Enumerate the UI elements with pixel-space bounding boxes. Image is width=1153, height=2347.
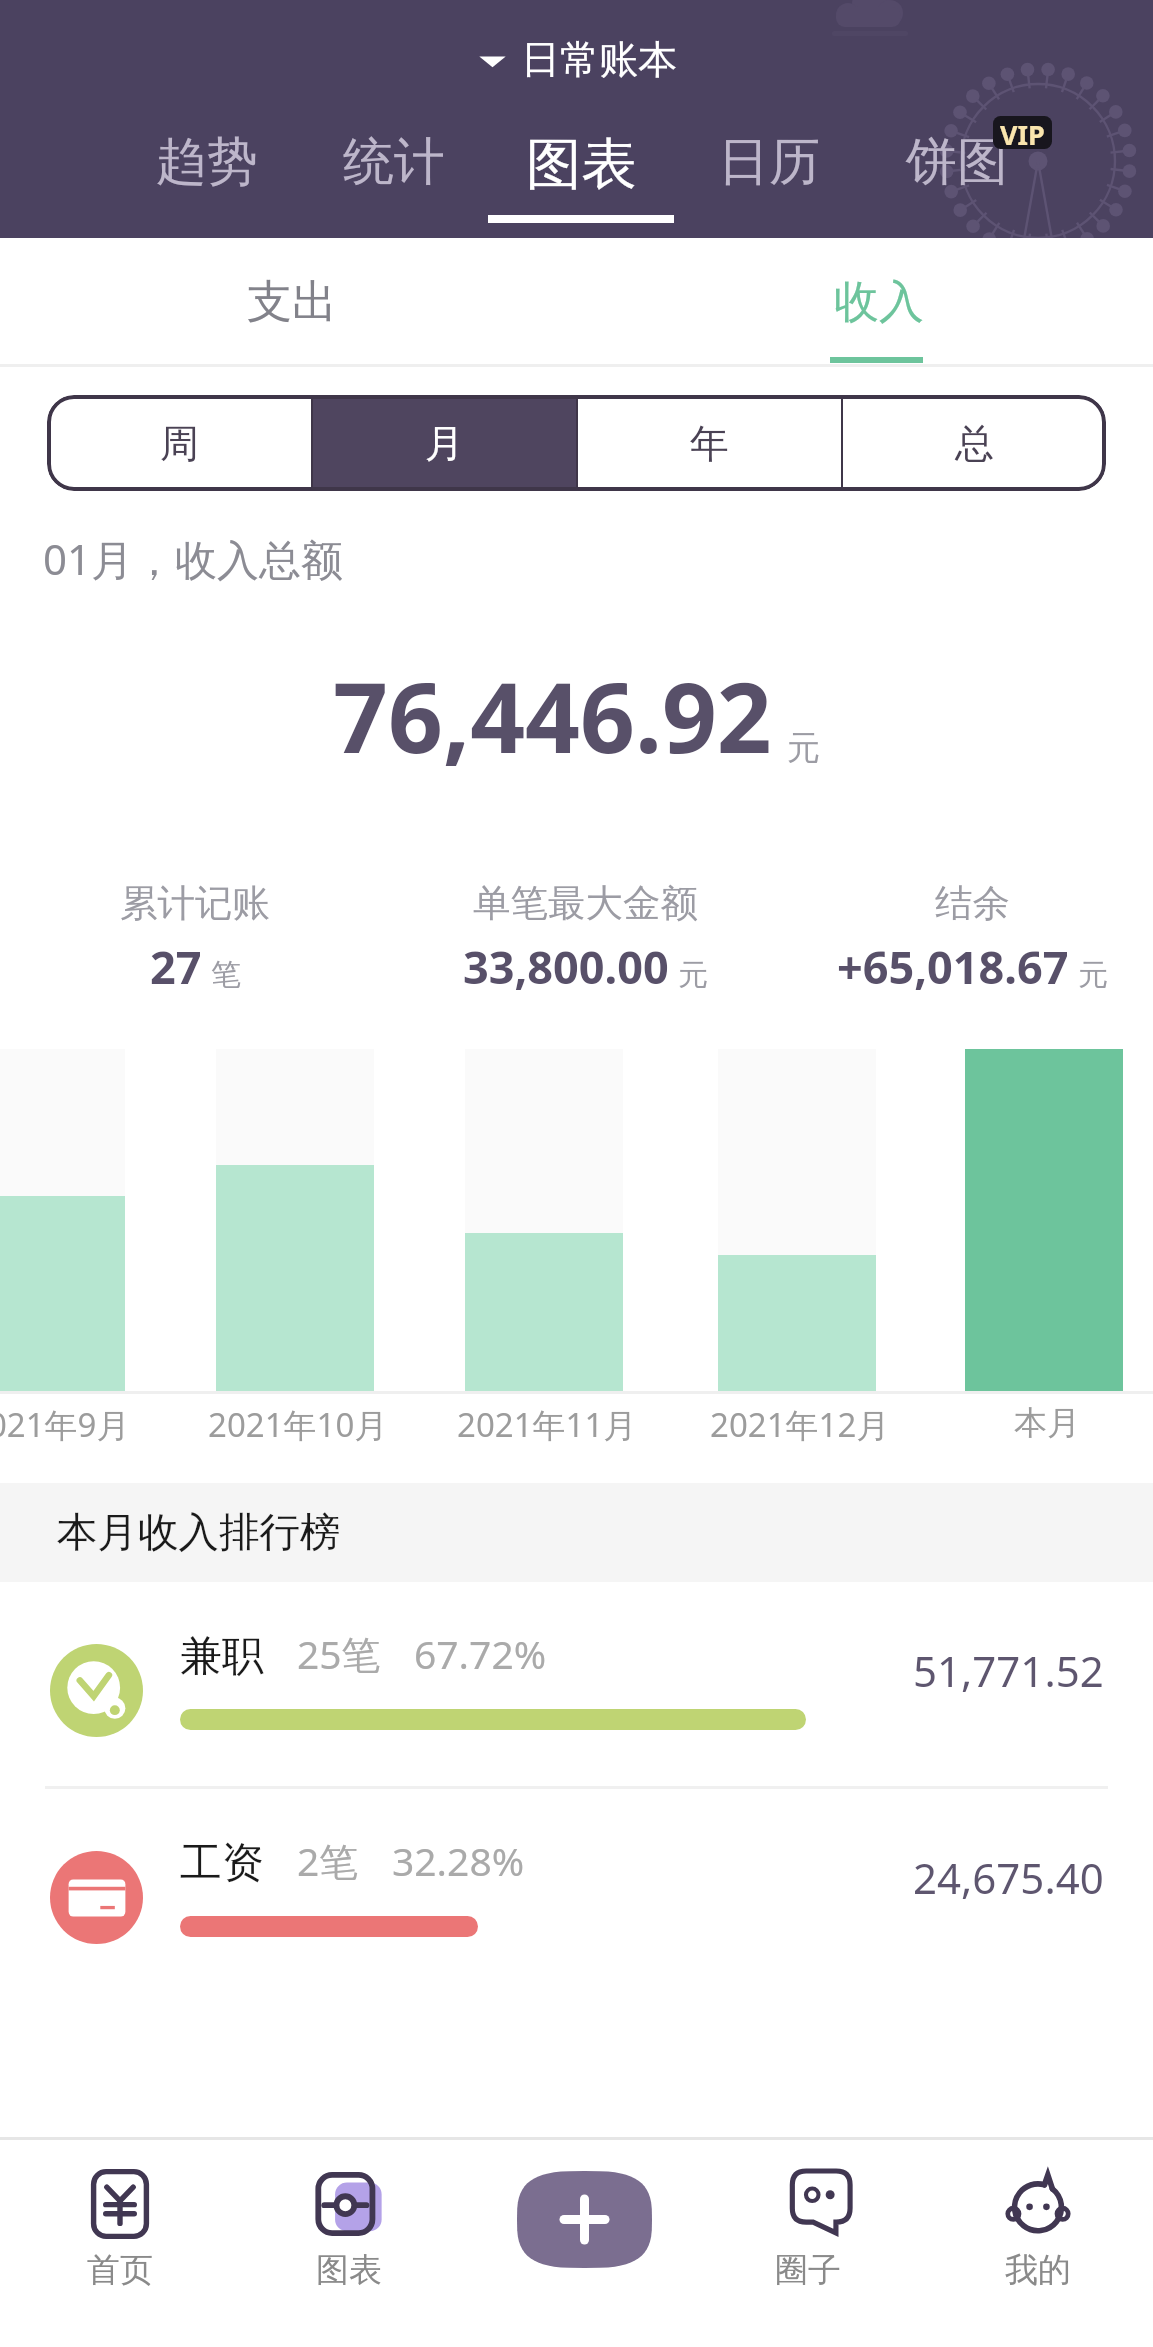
button[interactable]: 统计 xyxy=(300,118,487,238)
staticText: 我的 xyxy=(1005,2249,1071,2291)
staticText: 33,800.00 xyxy=(463,936,669,997)
staticText: 总 xyxy=(955,419,994,468)
button[interactable]: 日历 xyxy=(675,118,863,238)
staticText: 32.28% xyxy=(392,1834,525,1887)
staticText: 首页 xyxy=(87,2249,153,2291)
staticText: 支出 xyxy=(247,274,337,331)
staticText: 76,446.92 xyxy=(333,650,772,781)
staticText: 元 xyxy=(787,727,820,769)
staticText: 51,771.52 xyxy=(913,1642,1104,1699)
staticText: 2笔 xyxy=(297,1834,359,1887)
button[interactable]: 总 xyxy=(843,395,1106,491)
staticText: 元 xyxy=(678,956,708,994)
staticText: 2021年9月 xyxy=(0,1402,130,1447)
staticText: 27 xyxy=(150,936,202,997)
staticText: 图表 xyxy=(316,2249,382,2291)
staticText: 日常账本 xyxy=(521,35,677,84)
staticText: 24,675.40 xyxy=(913,1849,1104,1906)
staticText: 日历 xyxy=(718,130,820,194)
staticText: 结余 xyxy=(935,880,1010,927)
button[interactable]: 图表 xyxy=(234,2140,463,2347)
staticText: 趋势 xyxy=(156,130,258,194)
staticText: 累计记账 xyxy=(120,880,270,927)
staticText: 兼职 xyxy=(180,1630,264,1683)
button[interactable]: Add record xyxy=(517,2171,652,2268)
button[interactable]: 工资 xyxy=(0,1789,1153,1993)
staticText: 统计 xyxy=(343,130,445,194)
button[interactable]: 饼图 xyxy=(863,118,1051,238)
button[interactable]: 图表 xyxy=(487,118,675,238)
staticText: +65,018.67 xyxy=(837,936,1069,997)
staticText: 月 xyxy=(425,419,464,468)
button[interactable]: 我的 xyxy=(923,2140,1153,2347)
staticText: 周 xyxy=(160,419,199,468)
staticText: 年 xyxy=(690,419,729,468)
button[interactable]: 支出 xyxy=(0,238,576,364)
staticText: 2021年10月 xyxy=(208,1402,388,1447)
staticText: 67.72% xyxy=(414,1627,547,1680)
staticText: 本月收入排行榜 xyxy=(57,1507,341,1558)
staticText: VIP xyxy=(1000,116,1045,149)
button[interactable]: 首页 xyxy=(5,2140,234,2347)
staticText: 01月，收入总额 xyxy=(43,530,344,587)
button[interactable]: 收入 xyxy=(576,238,1153,364)
staticText: 工资 xyxy=(180,1837,264,1890)
button[interactable]: 周 xyxy=(47,395,311,491)
button[interactable]: 年 xyxy=(578,395,841,491)
staticText: 图表 xyxy=(526,130,637,200)
staticText: 2021年12月 xyxy=(710,1402,890,1447)
button[interactable]: 圈子 xyxy=(693,2140,923,2347)
staticText: 收入 xyxy=(834,274,924,331)
button[interactable]: 兼职 xyxy=(0,1582,1153,1786)
button[interactable]: 月 xyxy=(313,395,576,491)
staticText: 25笔 xyxy=(297,1627,381,1680)
button[interactable]: 趋势 xyxy=(113,118,300,238)
staticText: 本月 xyxy=(1014,1402,1080,1444)
staticText: 笔 xyxy=(211,956,241,994)
staticText: 饼图 xyxy=(906,130,1008,194)
staticText: 元 xyxy=(1078,956,1108,994)
staticText: 圈子 xyxy=(775,2249,841,2291)
staticText: 2021年11月 xyxy=(457,1402,637,1447)
staticText: 单笔最大金额 xyxy=(473,880,698,927)
